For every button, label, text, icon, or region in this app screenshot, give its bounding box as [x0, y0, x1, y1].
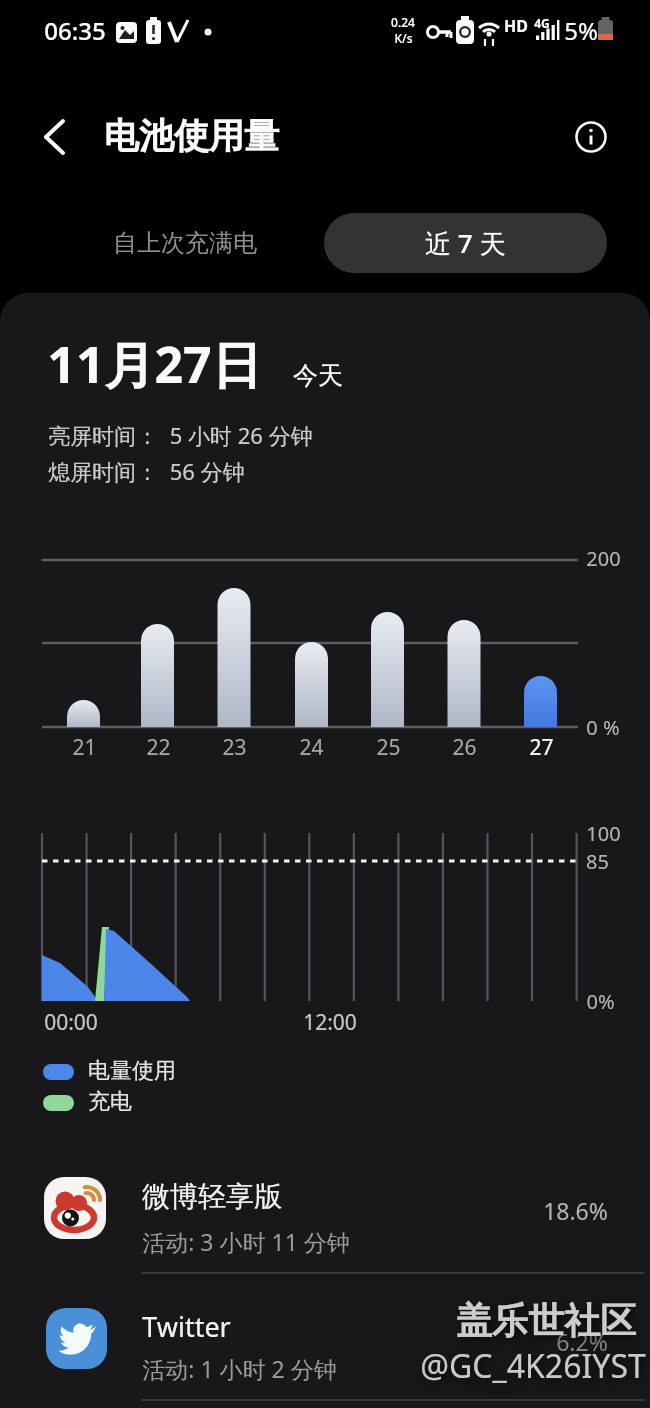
staticText: 电池使用量	[104, 114, 279, 158]
staticText: 22	[146, 733, 171, 762]
staticText: 11月27日	[47, 330, 262, 398]
button[interactable]: 近 7 天	[324, 213, 607, 273]
staticText: 亮屏时间： 5 小时 26 分钟	[48, 420, 313, 450]
staticText: 24	[299, 733, 324, 762]
staticText: 27	[529, 733, 554, 762]
staticText: 18.6%	[543, 1195, 608, 1226]
staticText: 100	[586, 820, 621, 847]
staticText: 微博轻享版	[142, 1179, 282, 1214]
staticText: 充电	[88, 1088, 132, 1116]
staticText: 自上次充满电	[113, 228, 257, 258]
staticText: 12:00	[303, 1008, 357, 1037]
button[interactable]	[30, 112, 80, 162]
staticText: HD	[504, 15, 528, 37]
button[interactable]	[570, 116, 614, 160]
staticText: 00:00	[44, 1008, 98, 1037]
staticText: 4G	[534, 15, 550, 31]
staticText: 26	[452, 733, 477, 762]
staticText: @GC_4K26IYST	[420, 1344, 646, 1388]
button[interactable]: 自上次充满电	[60, 213, 310, 273]
button[interactable]	[0, 1290, 650, 1400]
staticText: 23	[222, 733, 247, 762]
staticText: 活动: 1 小时 2 分钟	[142, 1353, 337, 1384]
staticText: 盖乐世社区	[456, 1298, 636, 1343]
staticText: 0.24	[391, 14, 415, 30]
staticText: 今天	[293, 360, 343, 391]
staticText: 21	[72, 733, 97, 762]
staticText: 85	[586, 848, 609, 875]
staticText: Twitter	[142, 1308, 231, 1345]
staticText: 25	[376, 733, 401, 762]
staticText: 熄屏时间： 56 分钟	[48, 456, 245, 486]
staticText: 06:35	[44, 14, 106, 47]
staticText: 电量使用	[88, 1057, 176, 1085]
staticText: 200	[586, 545, 621, 572]
staticText: 0%	[586, 988, 615, 1015]
staticText: 近 7 天	[425, 225, 506, 261]
staticText: K/s	[394, 30, 413, 46]
staticText: 5%	[564, 14, 598, 47]
staticText: 0 %	[586, 714, 620, 741]
staticText: 6.2%	[556, 1326, 608, 1357]
staticText: 活动: 3 小时 11 分钟	[142, 1226, 350, 1257]
button[interactable]	[0, 1165, 650, 1269]
